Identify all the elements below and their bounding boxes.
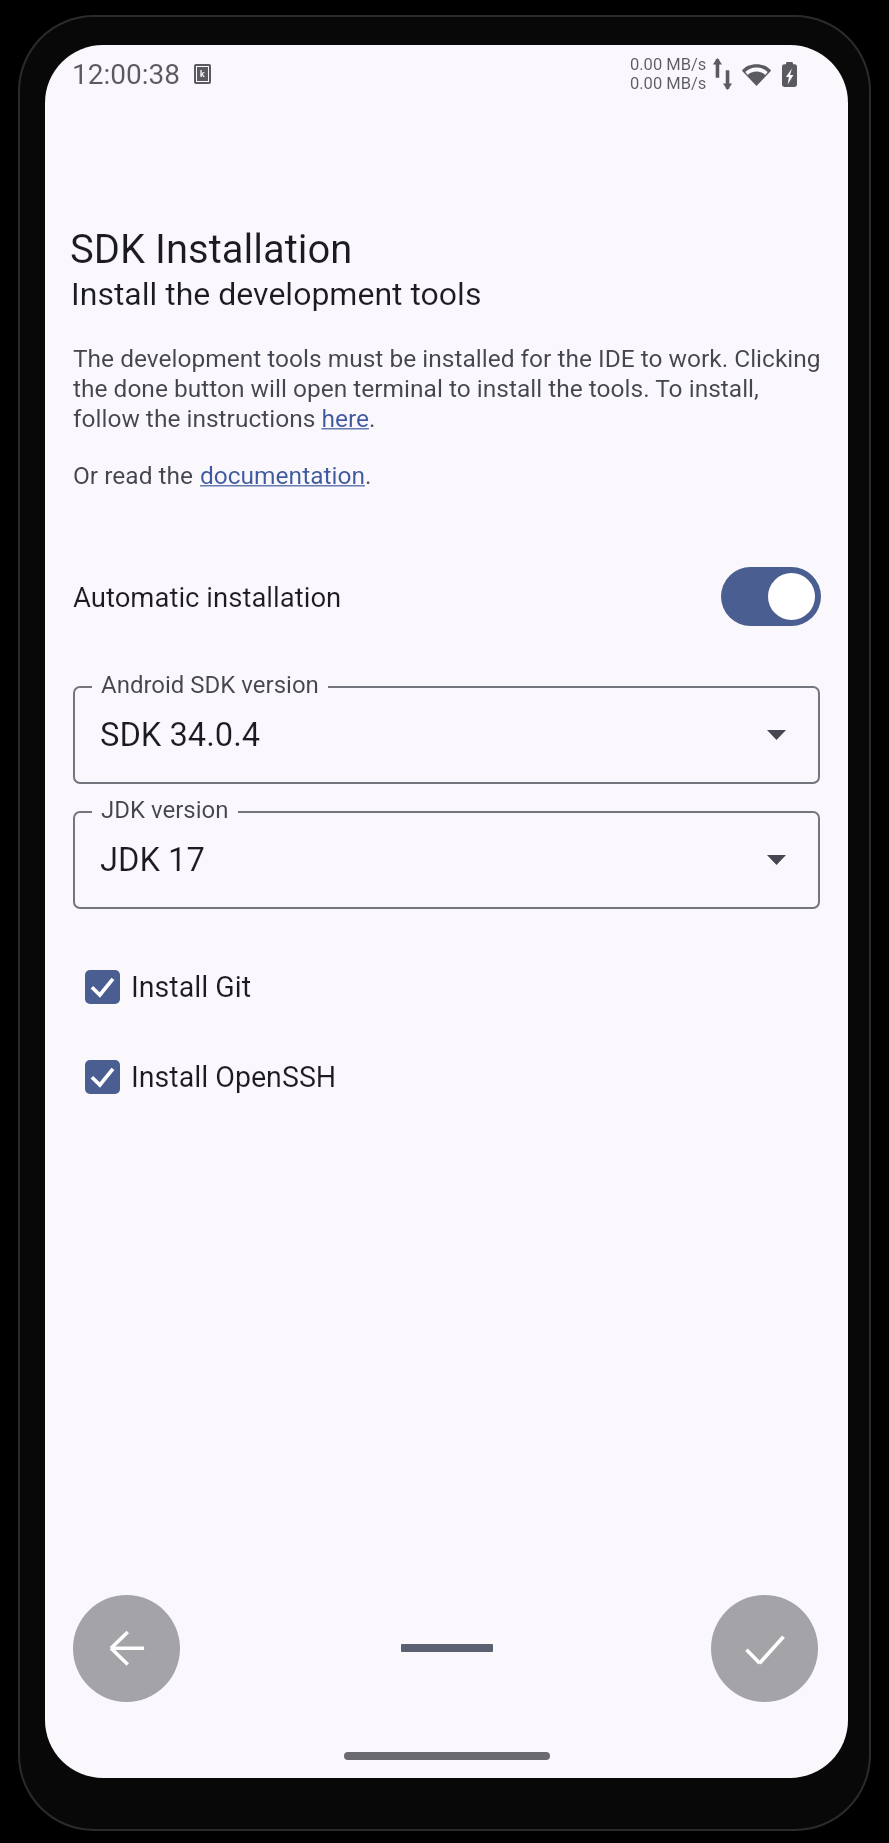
staticText: SDK 34.0.4 (100, 716, 261, 754)
button[interactable]: Back (73, 1595, 180, 1702)
staticText: . (365, 461, 372, 490)
staticText: Android SDK version (101, 671, 319, 699)
button[interactable]: Done (711, 1595, 818, 1702)
button[interactable]: here (321, 404, 369, 432)
staticText: Install Git (131, 970, 252, 1004)
button[interactable]: Automatic installation (73, 567, 821, 626)
staticText: SDK Installation (70, 226, 353, 273)
button[interactable]: Install OpenSSH (85, 1060, 585, 1094)
staticText: Install OpenSSH (131, 1060, 337, 1094)
staticText: Automatic installation (73, 581, 342, 613)
staticText: k (200, 69, 205, 80)
button[interactable] (721, 567, 821, 626)
staticText: The development tools must be installed … (73, 344, 821, 433)
button[interactable]: JDK 17 (73, 811, 820, 909)
button[interactable]: Install Git (85, 970, 585, 1004)
staticText: JDK version (101, 796, 229, 824)
staticText: 0.00 MB/s (630, 55, 707, 74)
button[interactable]: documentation (200, 461, 365, 490)
staticText: 0.00 MB/s (630, 74, 707, 93)
staticText: 12:00:38 (72, 58, 180, 91)
staticText: Or read the (73, 461, 200, 490)
staticText: Install the development tools (71, 275, 482, 313)
button[interactable]: SDK 34.0.4 (73, 686, 820, 784)
staticText: JDK 17 (100, 841, 205, 879)
